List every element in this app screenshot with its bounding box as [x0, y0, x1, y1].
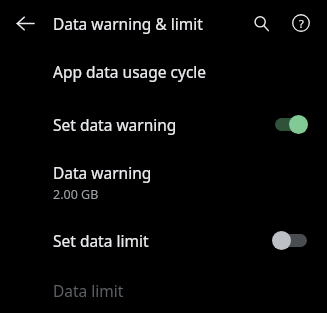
- staticText: Set data warning: [53, 114, 177, 135]
- button[interactable]: Set data warning: [0, 96, 327, 152]
- staticText: Set data limit: [53, 230, 149, 251]
- button[interactable]: Data warning: [0, 152, 327, 212]
- button[interactable]: Data limit: [0, 268, 327, 313]
- staticText: Data warning & limit: [53, 13, 203, 34]
- staticText: 2.00 GB: [53, 186, 99, 203]
- button[interactable]: Set data warning toggle, on: [271, 111, 311, 137]
- button[interactable]: Search: [245, 7, 277, 39]
- staticText: Data limit: [53, 280, 124, 301]
- button[interactable]: Set data limit toggle, off: [271, 227, 311, 253]
- staticText: App data usage cycle: [53, 61, 207, 82]
- button[interactable]: Set data limit: [0, 212, 327, 268]
- button[interactable]: Back: [9, 7, 41, 39]
- staticText: Data warning: [53, 162, 152, 183]
- button[interactable]: App data usage cycle: [0, 46, 327, 96]
- button[interactable]: Help: [285, 7, 317, 39]
- staticText: ?: [299, 16, 304, 31]
